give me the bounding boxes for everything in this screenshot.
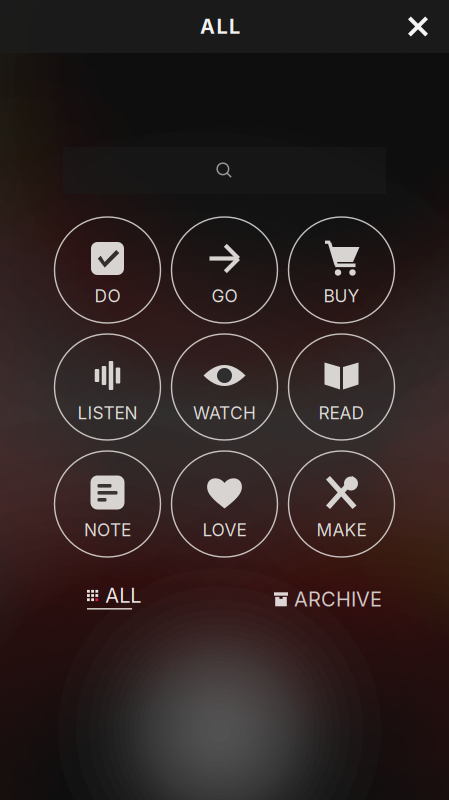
button[interactable]: BUY [288, 217, 394, 323]
staticText: ARCHIVE [294, 587, 382, 611]
button[interactable]: ARCHIVE [274, 593, 382, 606]
button[interactable] [63, 147, 386, 194]
staticText: READ [318, 402, 364, 423]
staticText: LISTEN [77, 402, 137, 423]
button[interactable]: READ [288, 334, 394, 440]
button[interactable]: GO [171, 217, 277, 323]
staticText: GO [211, 285, 237, 306]
button[interactable]: LOVE [171, 451, 277, 557]
staticText: BUY [323, 285, 359, 306]
staticText: LOVE [202, 519, 246, 540]
button[interactable]: NOTE [54, 451, 160, 557]
staticText: NOTE [84, 519, 131, 540]
button[interactable]: ALL [87, 589, 141, 610]
button[interactable]: LISTEN [54, 334, 160, 440]
staticText: WATCH [193, 402, 256, 423]
button[interactable]: MAKE [288, 451, 394, 557]
button[interactable]: Close [396, 4, 440, 48]
staticText: ALL [200, 14, 240, 39]
staticText: ALL [105, 583, 141, 608]
button[interactable]: WATCH [171, 334, 277, 440]
staticText: DO [94, 285, 120, 306]
button[interactable]: DO [54, 217, 160, 323]
staticText: MAKE [316, 519, 366, 540]
